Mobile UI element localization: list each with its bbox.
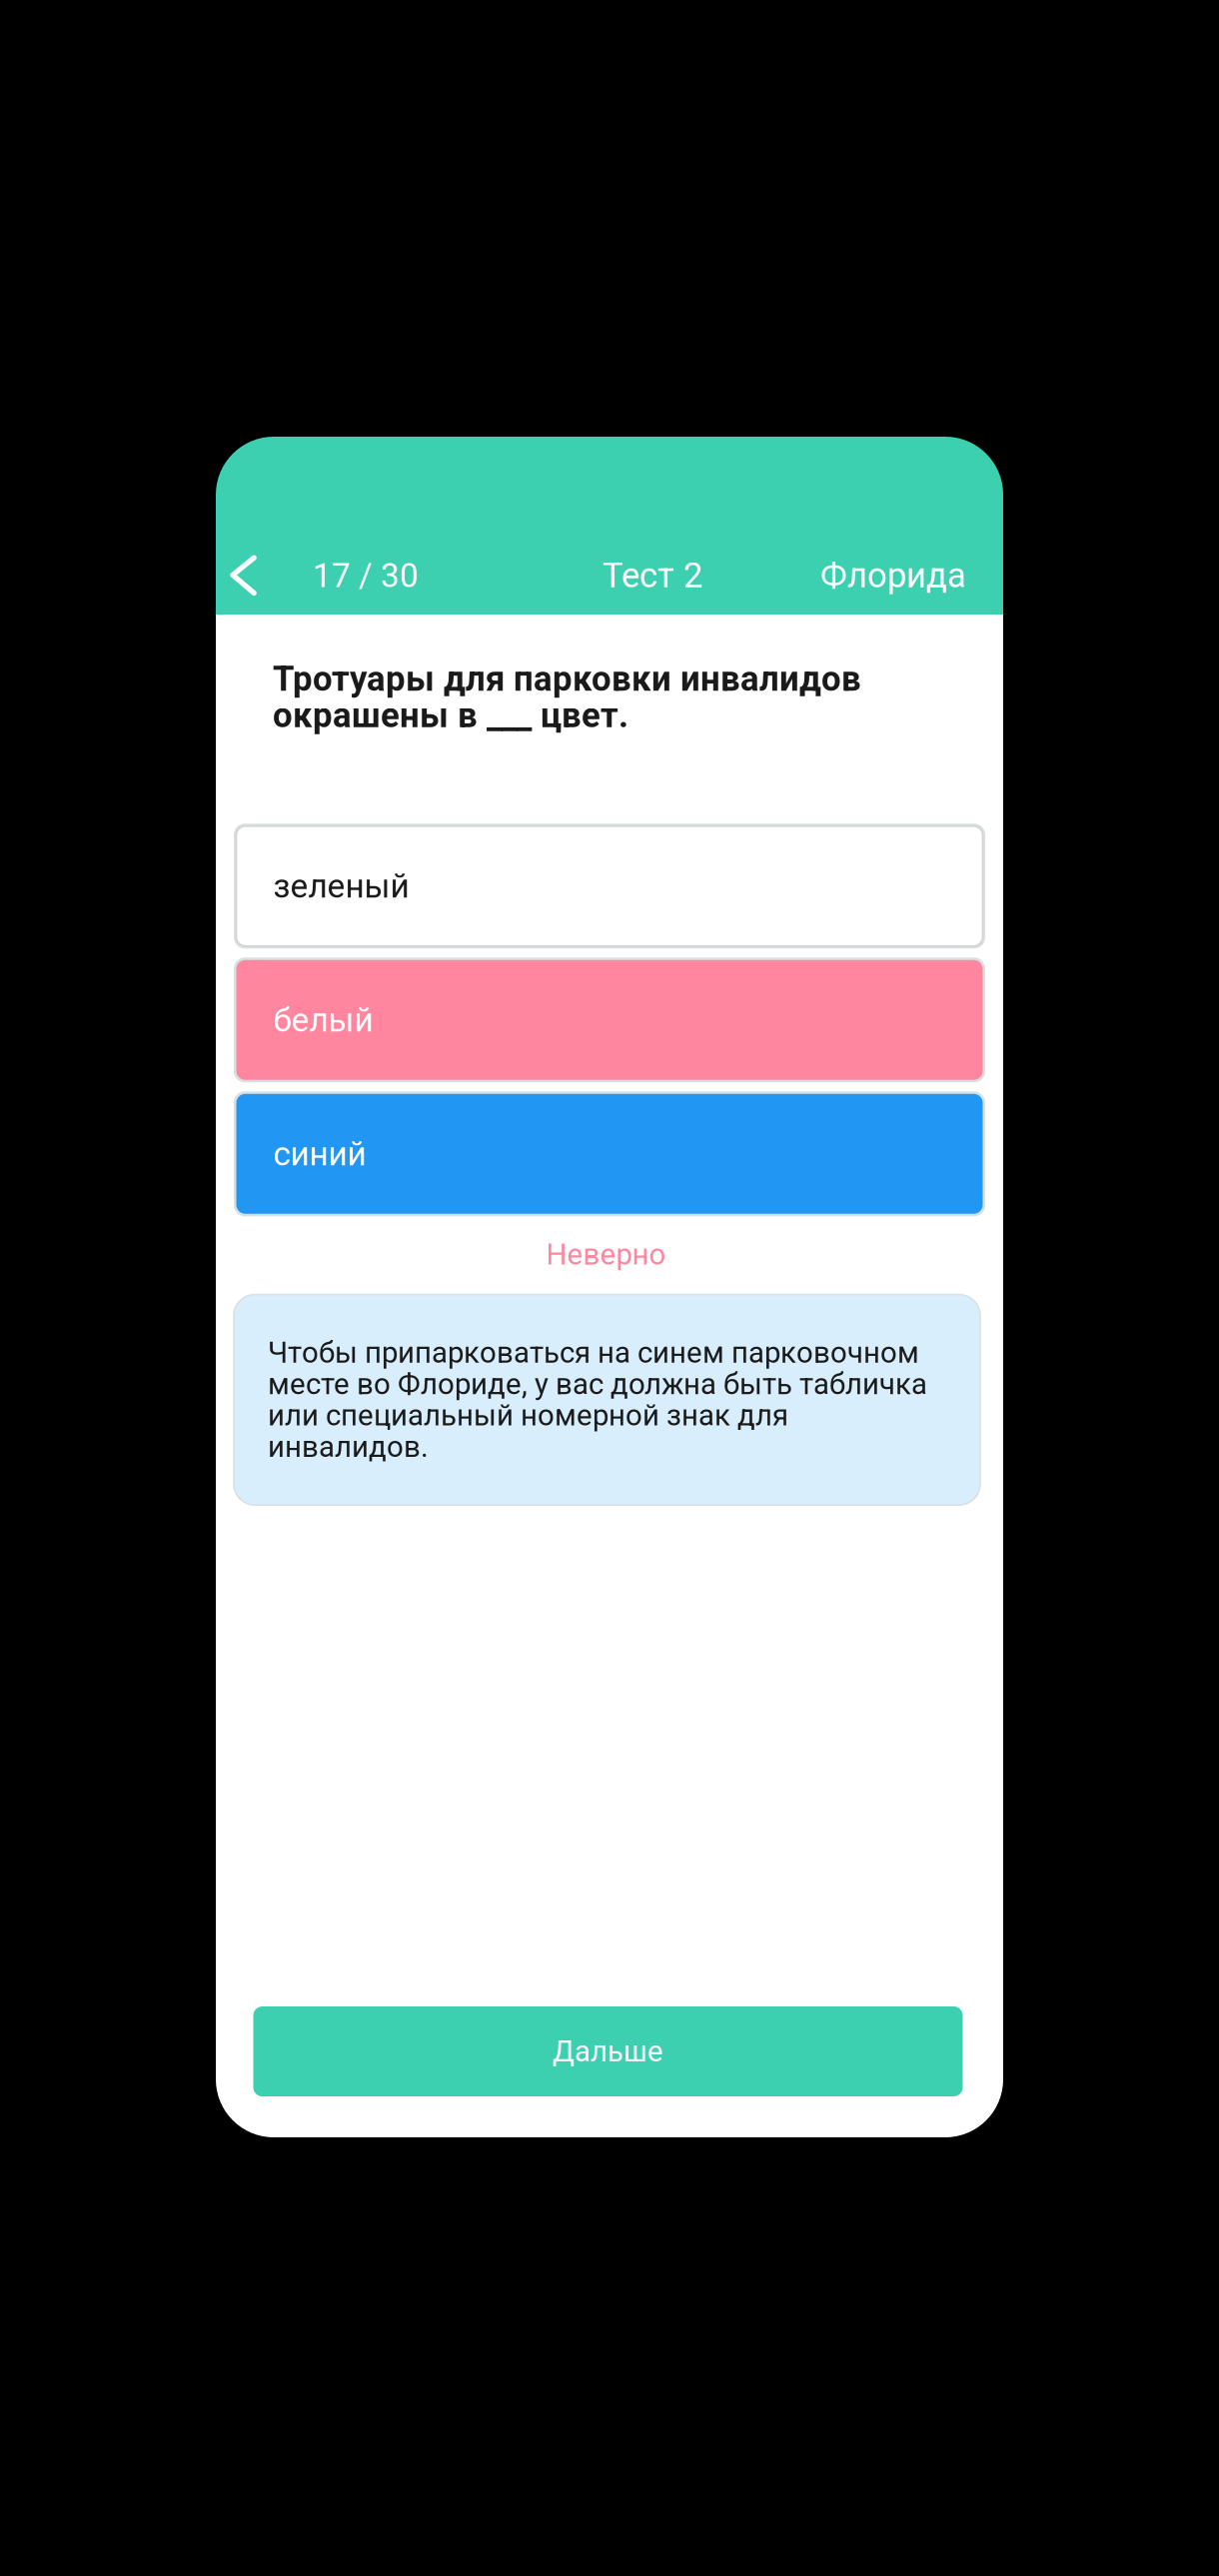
staticText: Флорида (820, 555, 966, 596)
staticText: Дальше (553, 2034, 663, 2069)
staticText: синий (273, 1134, 366, 1173)
button[interactable]: Back (230, 538, 274, 614)
staticText: 17 / 30 (313, 556, 419, 595)
staticText: Тротуары для парковки инвалидов окрашены… (273, 658, 861, 736)
staticText: Тест 2 (603, 555, 702, 596)
button[interactable]: Дальше (253, 2006, 963, 2096)
button[interactable]: белый (234, 958, 985, 1082)
staticText: белый (273, 1000, 373, 1039)
button[interactable]: синий (234, 1091, 985, 1216)
button[interactable]: Флорида (814, 555, 966, 596)
staticText: Неверно (546, 1237, 666, 1272)
staticText: Чтобы припарковаться на синем парковочно… (268, 1336, 927, 1464)
button[interactable]: зеленый (234, 824, 985, 949)
staticText: зеленый (273, 867, 409, 906)
